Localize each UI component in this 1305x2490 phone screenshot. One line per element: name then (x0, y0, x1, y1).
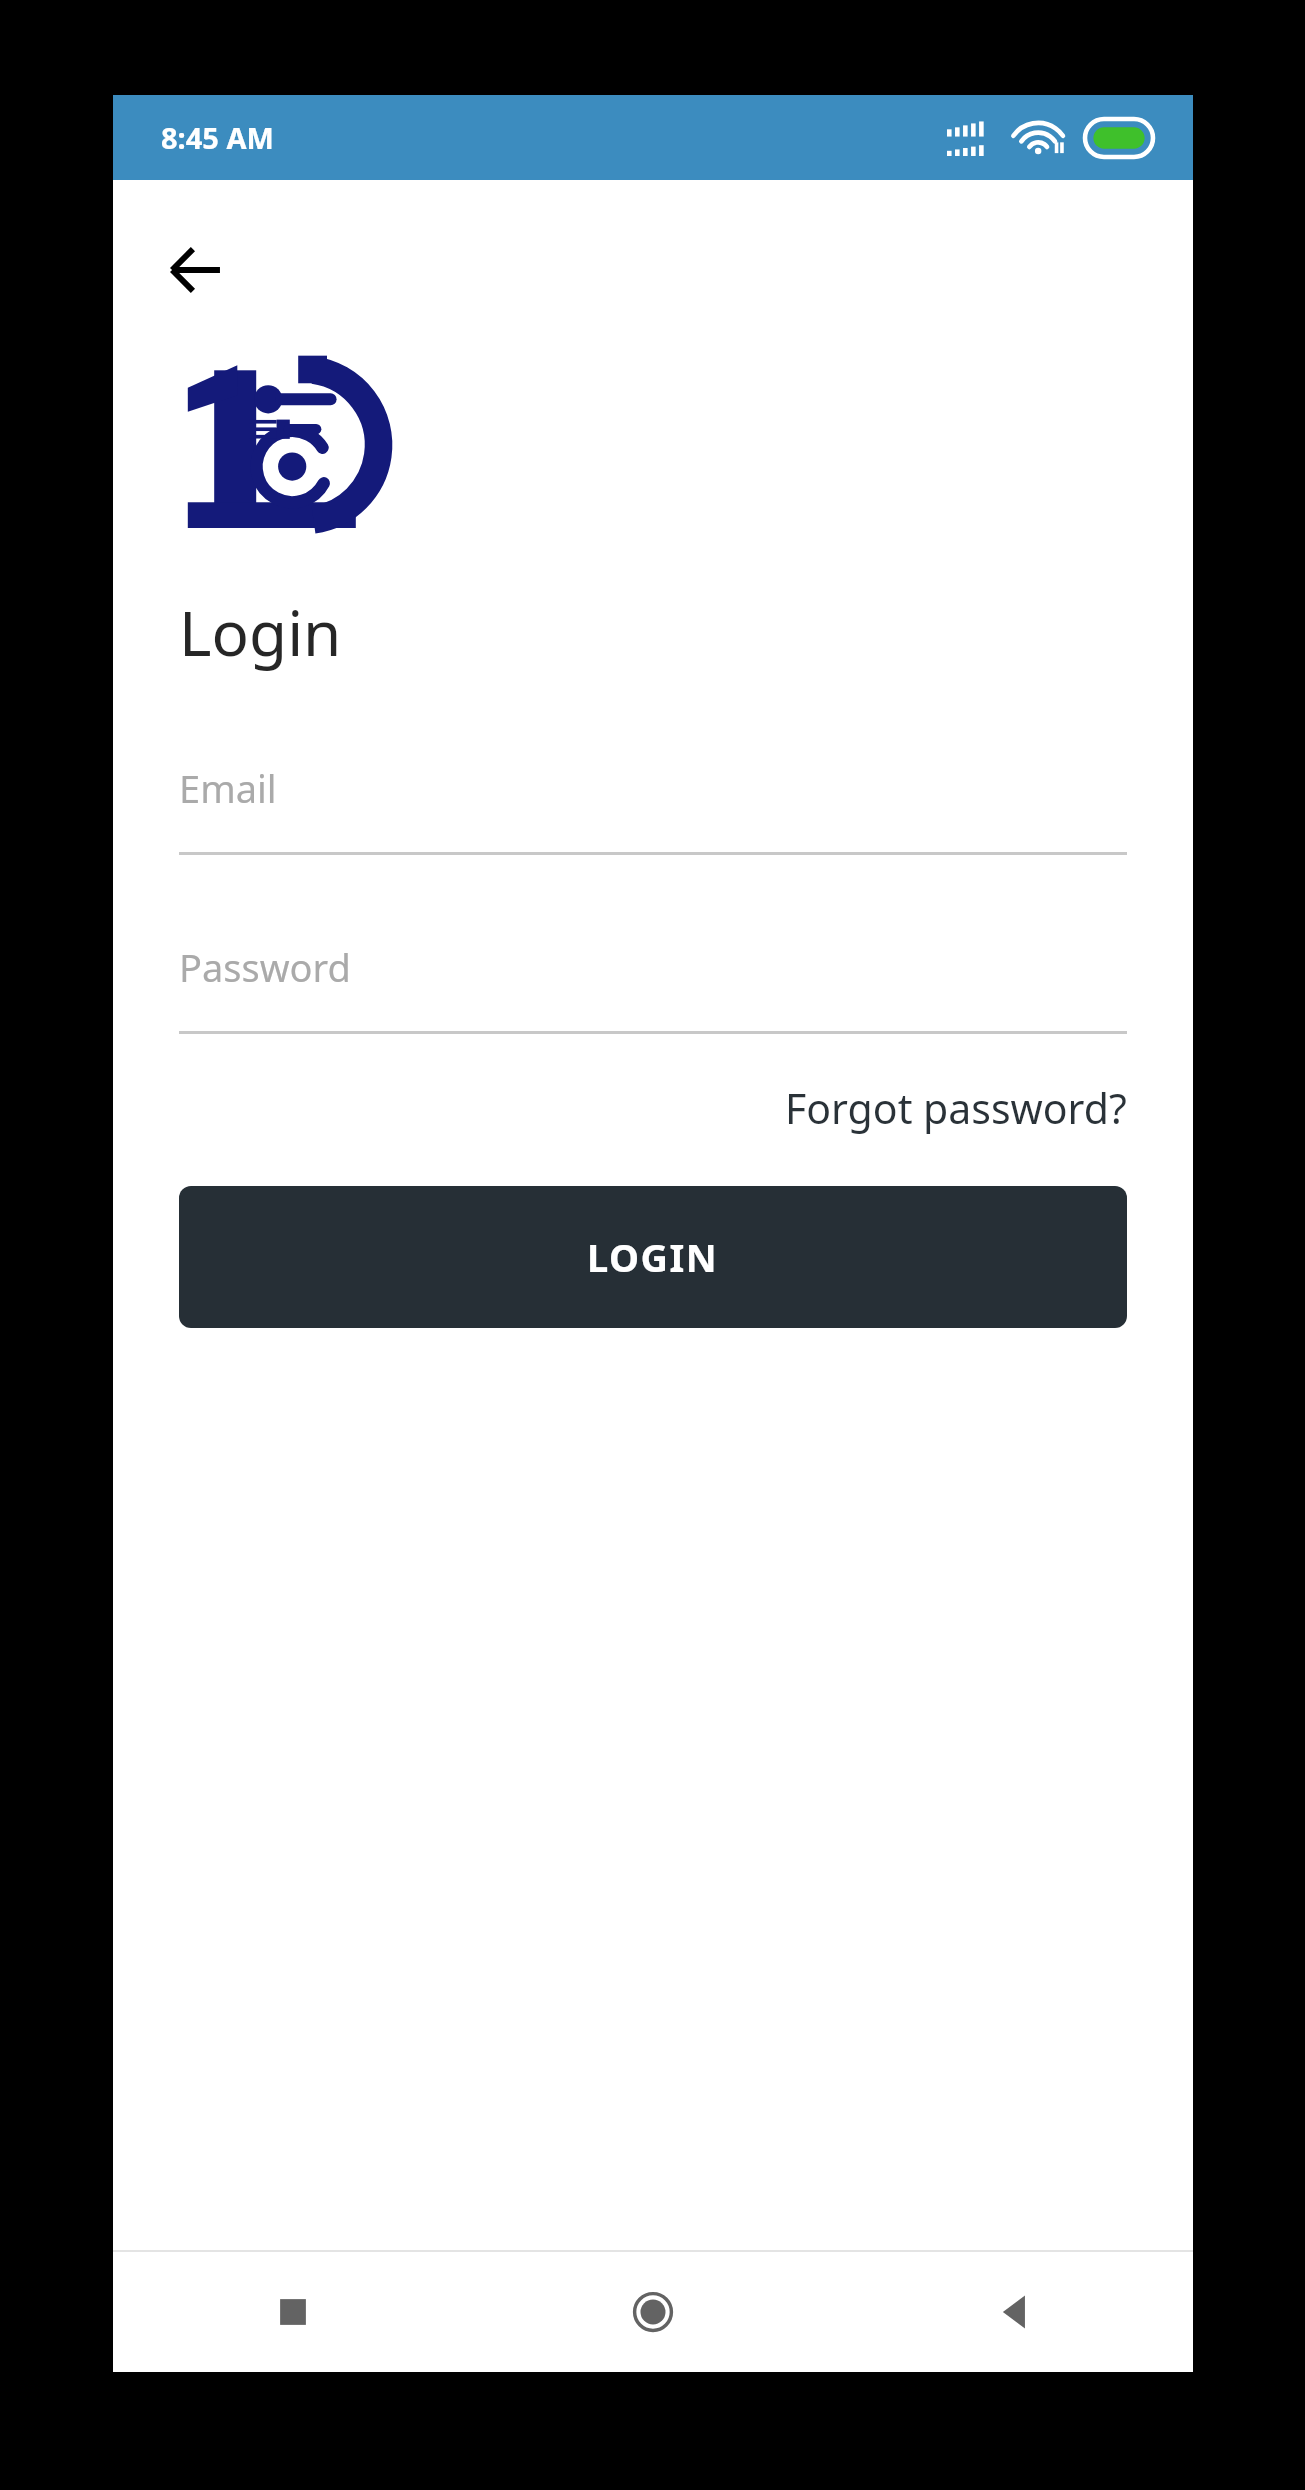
button[interactable]: Email (179, 762, 1127, 855)
button[interactable]: Forgot password? (785, 1080, 1127, 1136)
button[interactable]: Recent apps (113, 2252, 473, 2372)
button[interactable]: Home (473, 2252, 833, 2372)
button[interactable]: Back (147, 222, 243, 318)
button[interactable]: LOGIN (179, 1186, 1127, 1328)
button[interactable]: Password (179, 941, 1127, 1034)
staticText: Login (179, 590, 342, 674)
staticText: Email (179, 762, 277, 814)
button[interactable]: Back (833, 2252, 1193, 2372)
staticText: Password (179, 941, 351, 993)
staticText: Forgot password? (785, 1080, 1127, 1136)
staticText: 8:45 AM (161, 118, 274, 157)
staticText: LOGIN (587, 1231, 719, 1283)
